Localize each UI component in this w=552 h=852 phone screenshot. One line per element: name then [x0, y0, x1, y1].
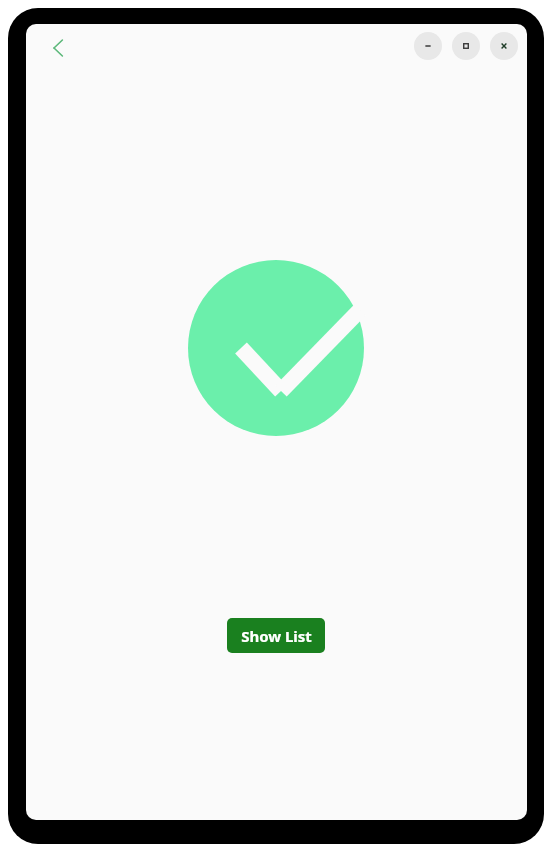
staticText: Show List: [241, 626, 312, 646]
other: Success: [166, 238, 386, 458]
button[interactable]: Minimize: [414, 32, 442, 60]
button[interactable]: Maximize: [452, 32, 480, 60]
button[interactable]: Show List: [227, 618, 325, 653]
button[interactable]: Close: [490, 32, 518, 60]
button[interactable]: Back: [38, 28, 78, 68]
